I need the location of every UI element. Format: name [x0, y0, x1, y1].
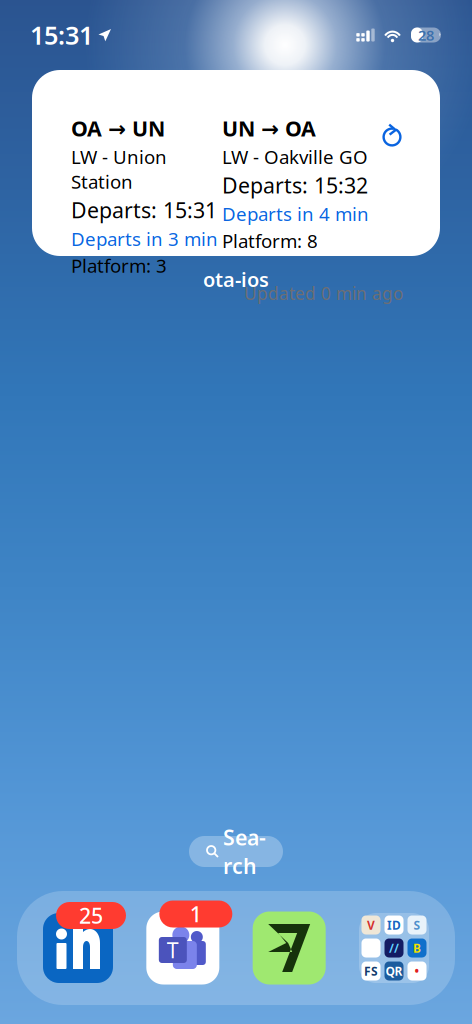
staticText: UN → OA	[222, 114, 316, 142]
staticText: Departs in 4 min	[222, 201, 369, 226]
button[interactable]: Folder	[359, 913, 429, 983]
staticText: Departs: 15:32	[222, 171, 368, 199]
staticText: LW - Oakville GO	[222, 144, 368, 169]
button[interactable]: Wise	[253, 911, 326, 984]
staticText: Search	[223, 823, 266, 880]
staticText: Departs: 15:31	[71, 196, 217, 224]
staticText: 15:31	[30, 18, 93, 52]
staticText: LW - Union Station	[71, 144, 167, 194]
staticText: B	[413, 940, 421, 956]
button[interactable]: LinkedIn	[43, 913, 113, 983]
staticText: V	[367, 917, 375, 933]
staticText: ID	[387, 917, 401, 933]
staticText: Updated 0 min ago	[244, 282, 403, 305]
staticText: S	[413, 917, 420, 933]
staticText: FS	[364, 963, 378, 979]
staticText: •	[414, 963, 419, 979]
staticText: QR	[385, 963, 402, 979]
staticText: Platform: 8	[222, 228, 318, 253]
staticText: 28	[418, 25, 434, 45]
staticText: OA → UN	[71, 114, 165, 142]
button[interactable]: Search	[189, 836, 283, 867]
staticText: T	[167, 936, 179, 964]
staticText: Departs in 3 min	[71, 226, 218, 251]
staticText: ota-ios	[203, 266, 269, 293]
staticText: 1	[190, 900, 202, 928]
staticText: 25	[79, 901, 103, 930]
staticText: //	[389, 940, 399, 956]
button[interactable]: Microsoft Teams	[146, 911, 219, 984]
staticText: Platform: 3	[71, 253, 167, 278]
